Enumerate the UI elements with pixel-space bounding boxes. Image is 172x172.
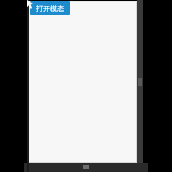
button[interactable]: 打开模态框 (30, 1, 70, 15)
staticText: 打开模态框 (33, 4, 67, 13)
